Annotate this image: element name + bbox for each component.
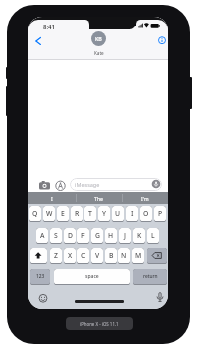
staticText: Q <box>32 209 38 218</box>
staticText: R <box>75 209 80 218</box>
staticText: F <box>81 231 85 240</box>
button[interactable]: L <box>147 228 159 244</box>
staticText: O <box>143 209 149 218</box>
staticText: P <box>158 209 163 218</box>
staticText: B <box>109 251 114 260</box>
button[interactable]: G <box>91 228 103 244</box>
staticText: space <box>85 273 99 280</box>
staticText: W <box>46 209 53 218</box>
staticText: J <box>124 231 126 240</box>
button[interactable]: S <box>50 228 62 244</box>
button[interactable]: R <box>71 206 83 222</box>
button[interactable]: T <box>84 206 96 222</box>
staticText: The <box>94 195 104 202</box>
staticText: H <box>108 231 114 240</box>
staticText: A <box>40 231 45 240</box>
button[interactable]: Y <box>98 206 110 222</box>
staticText: Kate <box>94 50 104 56</box>
button[interactable] <box>56 181 66 191</box>
button[interactable]: C <box>77 248 89 264</box>
staticText: I <box>131 209 134 218</box>
button[interactable]: X <box>64 248 76 264</box>
button[interactable]: Q <box>29 206 41 222</box>
staticText: N <box>121 251 127 260</box>
button[interactable]: 123 <box>30 269 50 285</box>
button[interactable]: I <box>126 206 138 222</box>
staticText: Z <box>54 251 58 260</box>
staticText: X <box>68 251 73 260</box>
button[interactable]: B <box>105 248 117 264</box>
button[interactable]: E <box>57 206 69 222</box>
button[interactable]: J <box>119 228 131 244</box>
button[interactable] <box>30 248 47 264</box>
button[interactable] <box>38 293 48 303</box>
staticText: G <box>95 231 100 240</box>
staticText: S <box>54 231 58 240</box>
button[interactable] <box>155 292 165 303</box>
staticText: iPhone X - iOS 11.1 <box>80 321 119 327</box>
staticText: L <box>151 231 155 240</box>
staticText: Y <box>102 209 106 218</box>
staticText: U <box>115 209 121 218</box>
staticText: M <box>135 251 142 260</box>
button[interactable]: A <box>36 228 48 244</box>
button[interactable]: W <box>43 206 55 222</box>
button[interactable]: N <box>118 248 130 264</box>
button[interactable]: F <box>77 228 89 244</box>
button[interactable]: M <box>132 248 144 264</box>
button[interactable]: U <box>112 206 124 222</box>
staticText: V <box>95 251 100 260</box>
button[interactable] <box>33 35 44 47</box>
button[interactable] <box>147 248 167 264</box>
staticText: iMessage <box>75 181 100 188</box>
staticText: C <box>81 251 86 260</box>
staticText: 8:41 <box>43 23 55 31</box>
staticText: K <box>137 231 142 240</box>
button[interactable]: KB <box>91 31 106 46</box>
button[interactable]: The <box>75 192 122 205</box>
button[interactable]: O <box>140 206 152 222</box>
button[interactable]: I'm <box>121 192 168 205</box>
button[interactable]: K <box>133 228 145 244</box>
staticText: I'm <box>141 195 149 202</box>
staticText: KB <box>95 35 102 42</box>
button[interactable]: V <box>91 248 103 264</box>
button[interactable] <box>38 181 50 190</box>
staticText: D <box>68 231 73 240</box>
button[interactable] <box>157 35 167 45</box>
staticText: return <box>143 273 158 280</box>
staticText: E <box>61 209 65 218</box>
button[interactable]: P <box>154 206 166 222</box>
button[interactable]: return <box>133 269 167 285</box>
button[interactable]: iMessage <box>70 178 162 191</box>
button[interactable]: space <box>54 269 130 285</box>
staticText: T <box>88 209 92 218</box>
button[interactable]: D <box>64 228 76 244</box>
button[interactable]: I <box>28 192 75 205</box>
staticText: I <box>51 195 53 202</box>
button[interactable]: Z <box>50 248 62 264</box>
button[interactable]: H <box>105 228 117 244</box>
staticText: 123 <box>36 273 45 280</box>
